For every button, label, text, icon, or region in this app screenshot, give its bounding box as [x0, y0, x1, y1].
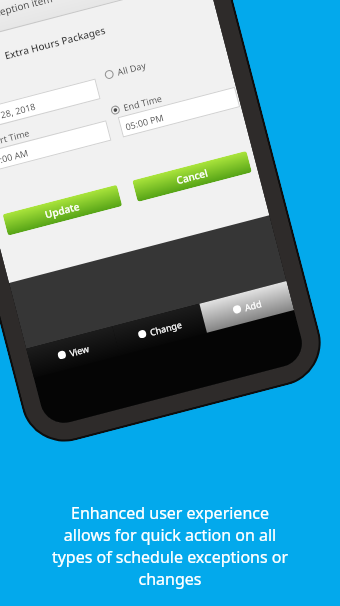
staticText: Enhanced user experience allows for quic…: [0, 502, 340, 590]
staticText: 05:00 PM: [124, 111, 165, 132]
staticText: View: [68, 342, 90, 359]
button[interactable]: Add: [199, 281, 294, 333]
other: Option: [104, 69, 115, 80]
staticText: Extra Hours Packages: [3, 23, 107, 62]
button[interactable]: Change: [112, 304, 207, 355]
other: Selected option: [110, 105, 121, 116]
staticText: July 28, 2018: [0, 100, 37, 125]
button[interactable]: Update: [2, 185, 122, 236]
staticText: Exception item: [0, 0, 54, 22]
button[interactable]: View: [26, 326, 120, 378]
staticText: End Time: [122, 91, 164, 113]
staticText: All Day: [116, 59, 147, 78]
staticText: Cancel: [175, 166, 209, 187]
staticText: Change: [148, 318, 183, 338]
button[interactable]: Cancel: [132, 151, 252, 202]
staticText: Start Time: [0, 126, 31, 149]
staticText: Update: [43, 199, 82, 221]
staticText: 9:00 AM: [0, 146, 30, 166]
staticText: Add: [243, 297, 263, 313]
